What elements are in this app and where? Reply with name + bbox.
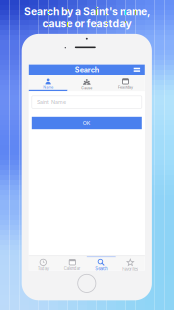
staticText: Favorites (122, 267, 138, 272)
staticText: Saint Name (37, 99, 66, 105)
staticText: Search (75, 65, 99, 74)
staticText: Cause (81, 86, 92, 90)
button[interactable]: Favorites (116, 256, 145, 270)
staticText: Name (43, 85, 53, 89)
staticText: Today (38, 266, 49, 271)
staticText: cause or feastday (42, 17, 131, 30)
button[interactable]: Today (29, 256, 58, 270)
button[interactable]: OK (29, 117, 145, 129)
staticText: Calendar (64, 266, 81, 271)
staticText: OK (83, 120, 91, 126)
button[interactable]: Calendar (58, 256, 87, 270)
button[interactable]: Feastday (106, 75, 145, 91)
staticText: Feastday (118, 85, 133, 89)
button[interactable]: Menu (131, 65, 142, 75)
button[interactable]: Cause (67, 75, 106, 91)
button[interactable]: Name (29, 75, 67, 91)
staticText: Search (95, 266, 107, 271)
staticText: Search by a Saint's name, (24, 5, 150, 18)
button[interactable]: Search (87, 256, 116, 270)
